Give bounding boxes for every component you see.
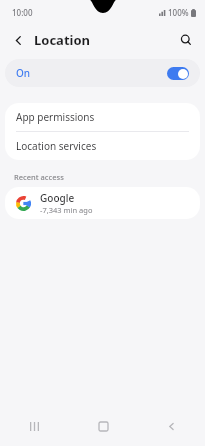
button[interactable]: Search xyxy=(173,27,199,53)
button[interactable]: Back xyxy=(5,27,31,53)
staticText: Location services xyxy=(16,139,97,153)
staticText: On xyxy=(16,66,31,80)
staticText: 10:00 xyxy=(12,7,33,18)
staticText: Google xyxy=(40,191,75,205)
staticText: Recent access xyxy=(14,172,64,182)
button[interactable]: On xyxy=(5,59,200,87)
button[interactable]: Location services xyxy=(5,132,200,160)
button[interactable]: Home xyxy=(69,412,137,440)
button[interactable]: Recents xyxy=(0,412,69,440)
staticText: Location xyxy=(34,31,90,49)
staticText: -7,343 min ago xyxy=(40,205,93,215)
button[interactable]: App permissions xyxy=(5,103,200,131)
button[interactable]: Back xyxy=(137,412,205,440)
button[interactable]: Google xyxy=(5,187,200,219)
staticText: App permissions xyxy=(16,110,95,124)
staticText: 100% xyxy=(168,7,189,18)
